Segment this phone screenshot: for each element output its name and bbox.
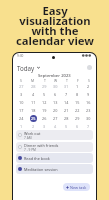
staticText: 13: [53, 100, 58, 105]
button[interactable]: 30: [52, 83, 59, 90]
staticText: Work out: [24, 131, 41, 136]
staticText: September 2023: [38, 73, 71, 78]
button[interactable]: 13: [52, 99, 59, 106]
button[interactable]: 6: [52, 91, 59, 98]
button[interactable]: Meditation session: [16, 164, 93, 174]
button[interactable]: 25: [30, 115, 37, 122]
staticText: 5: [43, 92, 46, 97]
staticText: 16: [86, 100, 91, 105]
button[interactable]: 28: [63, 115, 70, 122]
button[interactable]: 6: [74, 123, 81, 130]
staticText: 4: [54, 124, 57, 129]
button[interactable]: 1: [74, 83, 81, 90]
button[interactable]: 27: [18, 83, 25, 90]
button[interactable]: 2: [30, 123, 37, 130]
button[interactable]: 10: [18, 99, 25, 106]
staticText: 26: [42, 116, 47, 121]
button[interactable]: 4: [52, 123, 59, 130]
staticText: 6: [54, 92, 57, 97]
staticText: 15: [75, 100, 80, 105]
button[interactable]: 20: [52, 107, 59, 114]
button[interactable]: 29: [74, 115, 81, 122]
staticText: 7: [65, 92, 68, 97]
staticText: 7: [87, 124, 90, 129]
staticText: 17: [19, 108, 24, 113]
staticText: T: [44, 78, 46, 82]
staticText: F: [77, 78, 79, 82]
staticText: W: [54, 78, 58, 82]
staticText: Easy visualization with the calendar vie…: [16, 3, 94, 48]
button[interactable]: 5: [63, 123, 70, 130]
button[interactable]: Work out: [16, 130, 93, 140]
staticText: 8: [76, 92, 79, 97]
button[interactable]: Read the book: [16, 153, 93, 163]
staticText: S: [20, 78, 22, 82]
staticText: 31: [64, 84, 69, 89]
button[interactable]: 3: [18, 91, 25, 98]
staticText: 18: [31, 108, 36, 113]
staticText: Read the book: [24, 156, 50, 161]
staticText: T: [66, 78, 68, 82]
button[interactable]: 14: [63, 99, 70, 106]
button[interactable]: 26: [41, 115, 48, 122]
button[interactable]: 19: [41, 107, 48, 114]
button[interactable]: Today: [13, 62, 96, 73]
button[interactable]: Account: [87, 65, 92, 70]
staticText: Dinner with friends: [24, 143, 59, 148]
button[interactable]: 22: [74, 107, 81, 114]
button[interactable]: 31: [63, 83, 70, 90]
button[interactable]: 11: [30, 99, 37, 106]
button[interactable]: 23: [85, 107, 92, 114]
staticText: 1: [20, 124, 23, 129]
staticText: 23: [86, 108, 91, 113]
staticText: 29: [75, 116, 80, 121]
staticText: 29: [42, 84, 47, 89]
staticText: 4: [32, 92, 35, 97]
button[interactable]: 1: [18, 123, 25, 130]
button[interactable]: 7: [85, 123, 92, 130]
button[interactable]: 16: [85, 99, 92, 106]
button[interactable]: 2: [85, 83, 92, 90]
staticText: 27: [53, 116, 58, 121]
staticText: Today: [17, 64, 35, 72]
staticText: 19: [42, 108, 47, 113]
button[interactable]: Dinner with friends: [16, 142, 93, 152]
button[interactable]: 5: [41, 91, 48, 98]
staticText: 7 - 9 PM: [24, 148, 36, 152]
staticText: New task: [70, 185, 87, 190]
staticText: 24: [19, 116, 24, 121]
staticText: 9: [87, 92, 90, 97]
button[interactable]: 9: [85, 91, 92, 98]
button[interactable]: 15: [74, 99, 81, 106]
staticText: 21: [64, 108, 69, 113]
button[interactable]: 12: [41, 99, 48, 106]
staticText: 27: [19, 84, 24, 89]
button[interactable]: 8: [74, 91, 81, 98]
staticText: 7 AM: [24, 136, 32, 140]
staticText: 11: [31, 100, 36, 105]
staticText: 10: [19, 100, 24, 105]
staticText: 2: [87, 84, 90, 89]
button[interactable]: 17: [18, 107, 25, 114]
staticText: 9:30: [17, 54, 24, 57]
button[interactable]: 28: [30, 83, 37, 90]
staticText: 30: [53, 84, 58, 89]
staticText: 3: [20, 92, 23, 97]
staticText: 20: [53, 108, 58, 113]
staticText: 25: [31, 116, 36, 121]
button[interactable]: 30: [85, 115, 92, 122]
staticText: 22: [75, 108, 80, 113]
button[interactable]: 27: [52, 115, 59, 122]
button[interactable]: 29: [41, 83, 48, 90]
staticText: 12: [42, 100, 47, 105]
button[interactable]: New task: [63, 183, 90, 191]
button[interactable]: 7: [63, 91, 70, 98]
staticText: M: [31, 78, 35, 82]
staticText: 28: [64, 116, 69, 121]
button[interactable]: 4: [30, 91, 37, 98]
button[interactable]: 18: [30, 107, 37, 114]
button[interactable]: 24: [18, 115, 25, 122]
staticText: 5: [65, 124, 68, 129]
button[interactable]: 21: [63, 107, 70, 114]
button[interactable]: 3: [41, 123, 48, 130]
